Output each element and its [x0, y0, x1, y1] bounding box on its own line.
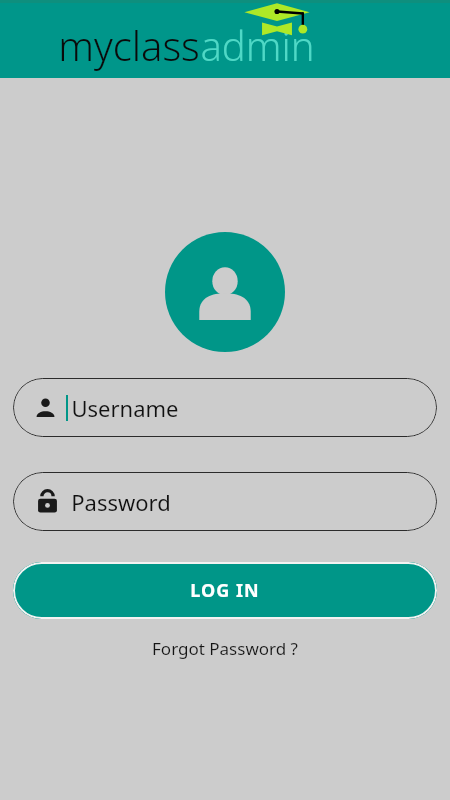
button[interactable]: LOG IN — [13, 562, 437, 619]
staticText: Forgot Password ? — [152, 637, 298, 660]
staticText: Username — [71, 393, 179, 423]
staticText: myclass — [58, 18, 200, 72]
button[interactable]: Password — [13, 472, 437, 531]
button[interactable]: Username — [13, 378, 437, 437]
staticText: Password — [71, 487, 171, 517]
staticText: admin — [200, 18, 315, 72]
button[interactable]: Forgot Password ? — [142, 633, 308, 664]
staticText: LOG IN — [190, 578, 260, 603]
